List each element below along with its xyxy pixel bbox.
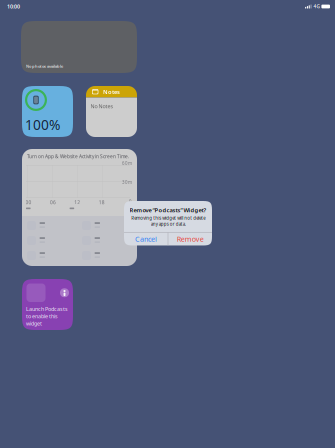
staticText: Remove “Podcasts” Widget? <box>129 206 206 214</box>
button[interactable]: No photos available <box>21 21 137 73</box>
staticText: 30m <box>122 179 132 185</box>
staticText: Notes <box>103 88 120 96</box>
staticText: 18 <box>99 199 105 205</box>
staticText: 60m <box>122 160 132 166</box>
button[interactable]: Notes <box>86 86 137 137</box>
staticText: 0 <box>129 199 132 205</box>
staticText: 06 <box>50 199 56 205</box>
staticText: Cancel <box>135 234 157 244</box>
button[interactable]: Cancel <box>124 232 168 245</box>
staticText: 00 <box>25 199 31 205</box>
staticText: No photos available <box>26 64 63 69</box>
staticText: No Notes <box>90 102 113 110</box>
button[interactable]: Remove <box>168 232 212 245</box>
staticText: 100% <box>25 115 60 134</box>
staticText: Turn on App & Website Activity in Screen… <box>27 153 129 159</box>
staticText: 4G <box>313 3 319 10</box>
button[interactable]: Launch Podcasts to enable this widget <box>22 279 73 330</box>
staticText: Launch Podcasts to enable this widget <box>26 305 68 327</box>
staticText: Removing this widget will not delete any… <box>131 215 205 227</box>
staticText: Remove <box>177 234 204 244</box>
staticText: 12 <box>74 199 80 205</box>
button[interactable]: 100% <box>22 86 73 137</box>
button[interactable]: Turn on App & Website Activity in Screen… <box>22 149 137 266</box>
staticText: 10:00 <box>7 3 20 10</box>
